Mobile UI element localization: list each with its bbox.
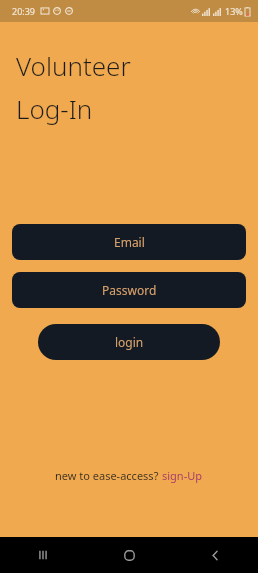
staticText: new to ease-access?	[55, 468, 162, 483]
button[interactable]: new to ease-access?	[0, 462, 258, 489]
button[interactable]: Recent apps	[0, 537, 86, 573]
staticText: 13%	[225, 5, 243, 17]
button[interactable]: Password	[12, 272, 246, 308]
button[interactable]: Home	[86, 537, 172, 573]
staticText: Volunteer	[16, 48, 131, 83]
button[interactable]: Email	[12, 224, 246, 260]
button[interactable]: login	[38, 324, 220, 360]
staticText: sign-Up	[162, 468, 203, 483]
button[interactable]: Back	[172, 537, 258, 573]
staticText: 20:39	[12, 5, 36, 17]
staticText: Log-In	[16, 91, 93, 126]
staticText: Email	[114, 234, 145, 250]
staticText: login	[115, 334, 144, 350]
staticText: Password	[102, 282, 157, 298]
